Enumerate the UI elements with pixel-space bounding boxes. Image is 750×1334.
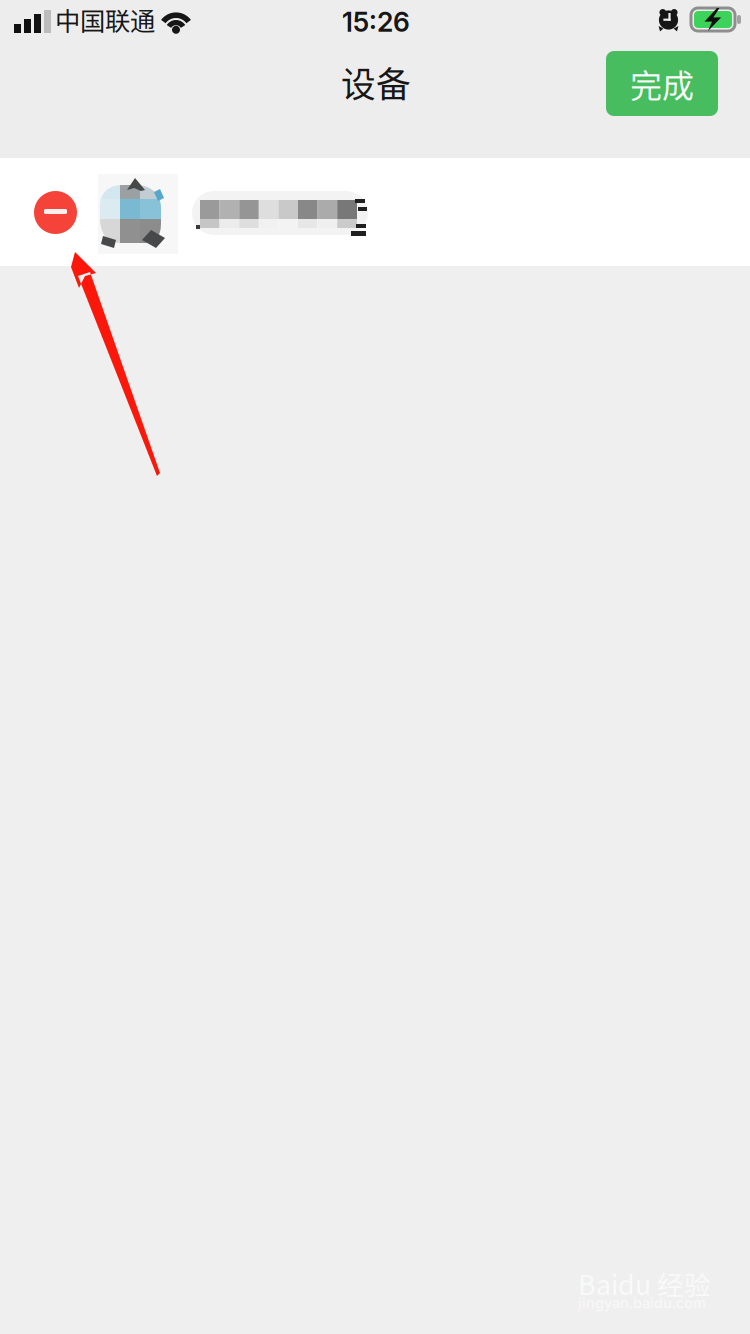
staticText: 中国联通: [55, 1, 155, 38]
button[interactable]: 移除设备: [0, 158, 112, 266]
staticText: jingyan.baidu.com: [578, 1294, 706, 1312]
staticText: 设备: [341, 57, 411, 107]
staticText: Baidu 经验: [578, 1264, 711, 1303]
staticText: 15:26: [342, 6, 410, 38]
staticText: 完成: [630, 60, 694, 107]
button[interactable]: 完成: [606, 51, 718, 116]
